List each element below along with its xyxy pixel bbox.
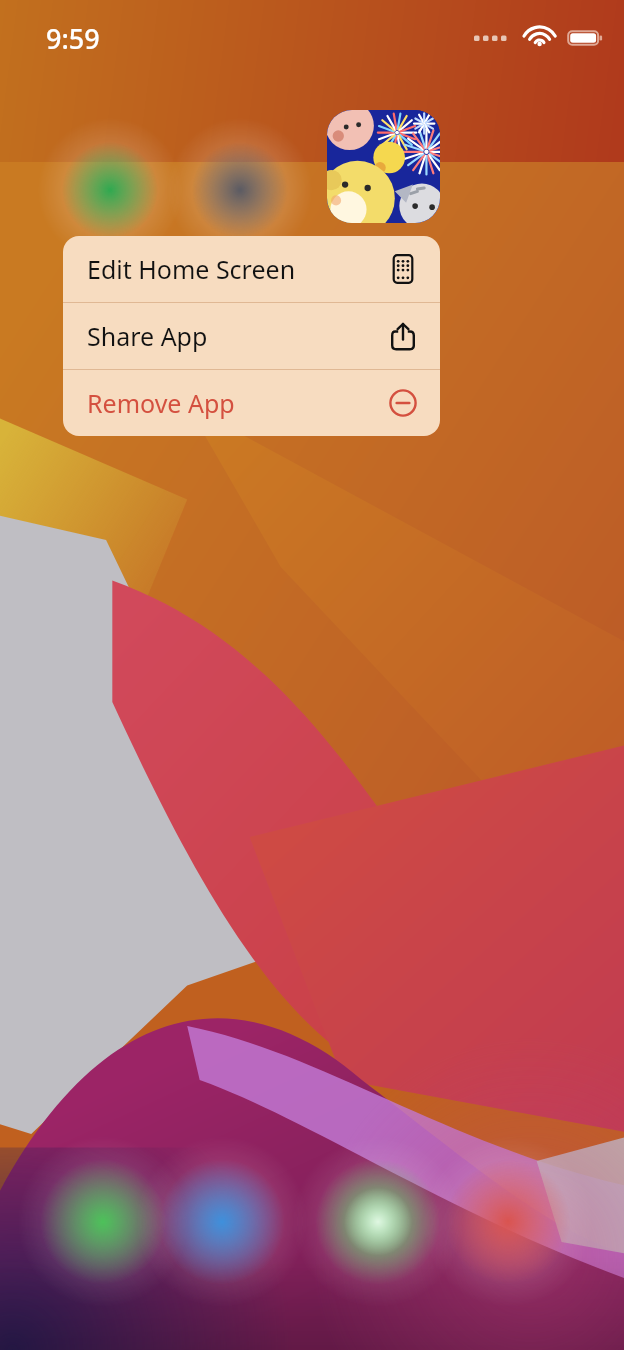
staticText: Edit Home Screen — [87, 252, 388, 286]
staticText: 9:59 — [46, 20, 100, 57]
button[interactable]: Remove App — [63, 370, 440, 436]
staticText: Share App — [87, 319, 388, 353]
staticText: Remove App — [87, 386, 388, 420]
button[interactable]: Animal Crossing Pocket Camp — [327, 110, 440, 223]
button[interactable]: Edit Home Screen — [63, 236, 440, 302]
button[interactable]: Share App — [63, 303, 440, 369]
